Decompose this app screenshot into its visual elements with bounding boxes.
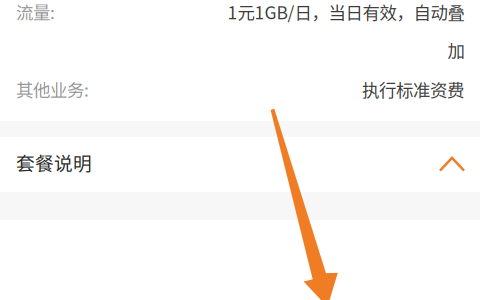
staticText: 1元1GB/日，当日有效，自动叠加 [227, 0, 464, 63]
staticText: 执行标准资费 [362, 77, 464, 102]
staticText: 套餐说明 [16, 149, 92, 176]
staticText: 流量: [16, 0, 55, 24]
staticText: 其他业务: [16, 77, 89, 102]
button[interactable]: 套餐说明 [0, 137, 480, 192]
